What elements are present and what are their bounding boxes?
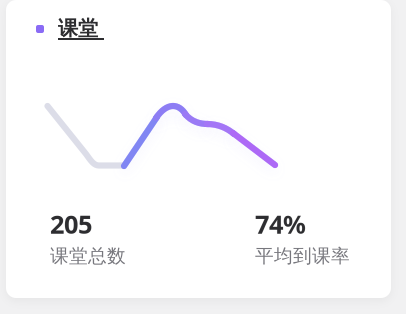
staticText: 课堂 xyxy=(58,16,98,41)
button[interactable]: 课堂 xyxy=(36,16,98,41)
staticText: 74% xyxy=(255,207,306,241)
staticText: 平均到课率 xyxy=(255,245,350,267)
staticText: 205 xyxy=(50,207,92,241)
staticText: 课堂总数 xyxy=(50,245,126,267)
